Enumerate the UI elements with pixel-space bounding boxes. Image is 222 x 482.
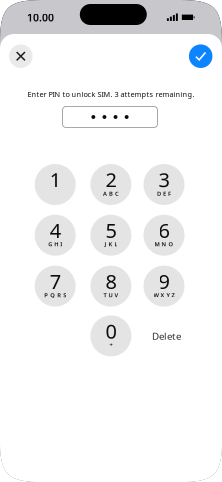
staticText: 1 (50, 166, 61, 193)
button[interactable]: 3 (143, 164, 184, 205)
staticText: 7 (50, 268, 61, 294)
button[interactable]: 2 (90, 164, 131, 205)
staticText: 5 (105, 217, 116, 244)
button[interactable]: 6 (143, 215, 184, 256)
button[interactable]: 1 (35, 164, 76, 205)
staticText: Enter PIN to unlock SIM. 3 attempts rema… (27, 89, 194, 99)
staticText: G H I (48, 240, 62, 248)
staticText: M N O (154, 240, 173, 248)
staticText: 3 (158, 166, 169, 193)
staticText: 9 (158, 268, 169, 294)
button[interactable]: Close (9, 44, 33, 68)
button[interactable]: 9 (143, 266, 184, 307)
button[interactable]: Confirm (189, 44, 212, 68)
button[interactable]: 8 (90, 266, 131, 307)
staticText: T U V (103, 291, 118, 299)
staticText: 4 (50, 217, 61, 244)
staticText: 2 (105, 166, 116, 193)
staticText: 8 (105, 268, 116, 294)
staticText: + (109, 341, 112, 349)
staticText: Delete (152, 329, 181, 342)
staticText: A B C (103, 190, 119, 197)
staticText: J K L (104, 240, 117, 248)
staticText: W X Y Z (153, 291, 174, 299)
staticText: P Q R S (44, 291, 66, 299)
button[interactable]: Delete (139, 315, 195, 356)
button[interactable]: 0 (90, 315, 131, 356)
staticText: D E F (157, 190, 171, 197)
staticText: 6 (158, 217, 169, 244)
staticText: 0 (105, 318, 116, 344)
button[interactable]: 5 (90, 215, 131, 256)
button[interactable]: 4 (35, 215, 76, 256)
button[interactable]: 7 (35, 266, 76, 307)
staticText: 10.00 (27, 11, 54, 24)
